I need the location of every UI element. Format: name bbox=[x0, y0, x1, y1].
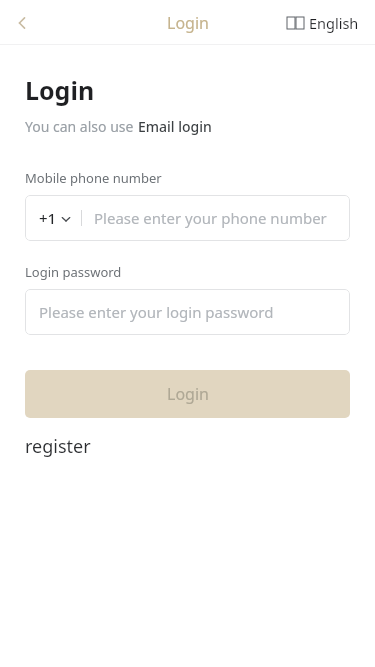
staticText: register bbox=[25, 434, 91, 459]
button[interactable]: +1 bbox=[25, 208, 81, 228]
staticText: Please enter your phone number bbox=[94, 208, 327, 228]
button[interactable]: English bbox=[285, 7, 361, 39]
staticText: Mobile phone number bbox=[25, 169, 162, 187]
button[interactable]: Email login bbox=[138, 117, 212, 136]
button[interactable]: register bbox=[25, 434, 91, 459]
button[interactable]: Please enter your login password bbox=[25, 289, 350, 335]
button[interactable]: Back bbox=[0, 1, 44, 45]
staticText: You can also use bbox=[25, 117, 138, 136]
staticText: +1 bbox=[39, 208, 57, 228]
staticText: Please enter your login password bbox=[39, 302, 274, 322]
staticText: English bbox=[309, 13, 359, 33]
staticText: Email login bbox=[138, 117, 212, 136]
staticText: Login bbox=[25, 73, 95, 107]
button[interactable]: Login bbox=[25, 370, 350, 418]
staticText: Login password bbox=[25, 263, 122, 281]
staticText: Login bbox=[167, 12, 209, 34]
staticText: Login bbox=[167, 383, 209, 405]
